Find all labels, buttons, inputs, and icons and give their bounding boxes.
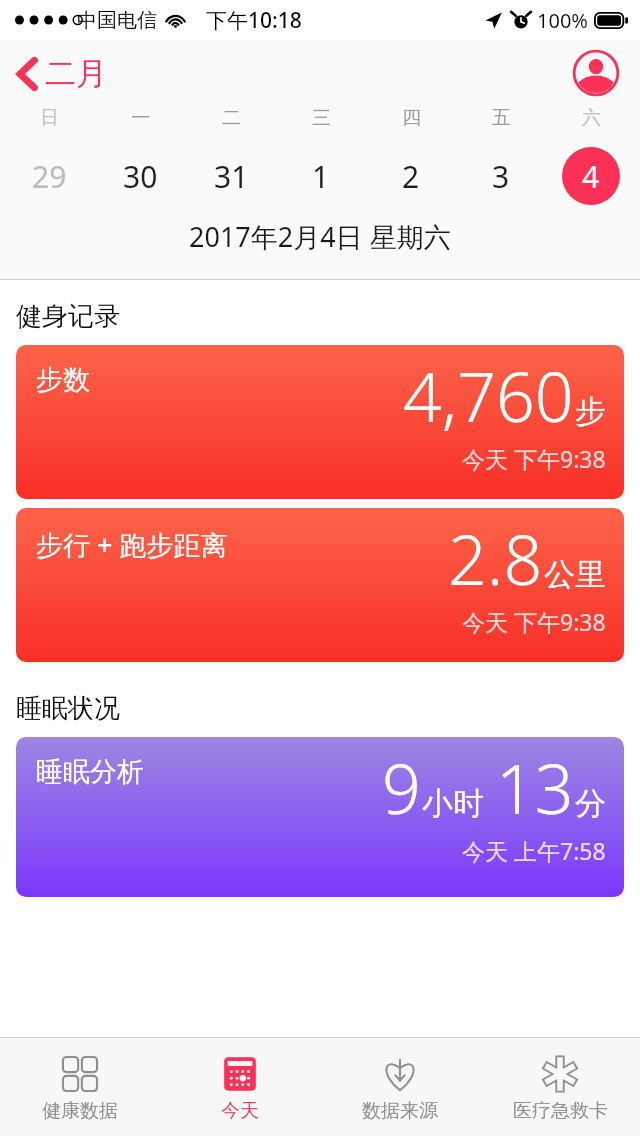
staticText: 步数 [36,363,90,397]
button[interactable]: 数据来源 [320,1038,480,1136]
staticText: 31 [214,156,249,197]
staticText: 9 [382,741,421,834]
button[interactable]: 个人资料 [570,47,622,99]
staticText: 4 [582,156,600,197]
staticText: 五 [492,106,511,130]
staticText: 日 [40,106,59,130]
staticText: 小时 [422,784,484,823]
staticText: 1 [312,156,330,197]
staticText: 一 [131,106,150,130]
staticText: 3 [492,156,510,197]
staticText: 30 [123,156,158,197]
button[interactable]: 31 [186,146,276,206]
button[interactable]: 健康数据 [0,1038,160,1136]
staticText: 今天 下午9:38 [462,443,606,474]
staticText: 健康数据 [42,1099,118,1123]
button[interactable]: 1 [276,146,366,206]
staticText: 4,760 [403,349,574,442]
staticText: 下午10:18 [206,6,302,35]
button[interactable]: 29 [4,146,95,206]
staticText: 二 [222,106,241,130]
staticText: 2.8 [448,512,543,605]
staticText: 睡眠状况 [16,692,120,725]
staticText: 睡眠分析 [36,755,144,789]
button[interactable]: 医疗急救卡 [480,1038,640,1136]
button[interactable]: 步数 [16,345,624,499]
staticText: 医疗急救卡 [513,1099,608,1123]
staticText: 步 [575,392,606,431]
staticText: 四 [402,106,421,130]
staticText: 今天 [221,1099,259,1123]
staticText: 2017年2月4日 星期六 [189,218,451,255]
button[interactable]: 二月 [12,48,111,99]
button[interactable]: 4 [546,146,636,206]
staticText: 中国电信 [77,8,157,33]
staticText: 健身记录 [16,300,120,333]
staticText: 三 [312,106,331,130]
staticText: 29 [32,156,67,197]
staticText: 13 [496,741,574,834]
button[interactable]: 3 [456,146,546,206]
staticText: 步行 + 跑步距离 [36,526,228,563]
button[interactable]: 30 [95,146,186,206]
staticText: 公里 [544,555,606,594]
staticText: 今天 下午9:38 [462,606,606,637]
staticText: 今天 上午7:58 [462,835,606,866]
staticText: 100% [537,7,588,34]
button[interactable]: 2 [366,146,456,206]
staticText: 六 [582,106,601,130]
staticText: 二月 [45,54,107,93]
button[interactable]: 今天 [160,1038,320,1136]
staticText: 2 [402,156,420,197]
button[interactable]: 步行 + 跑步距离 [16,508,624,662]
button[interactable]: 睡眠分析 [16,737,624,897]
staticText: 数据来源 [362,1099,438,1123]
staticText: 分 [575,784,606,823]
